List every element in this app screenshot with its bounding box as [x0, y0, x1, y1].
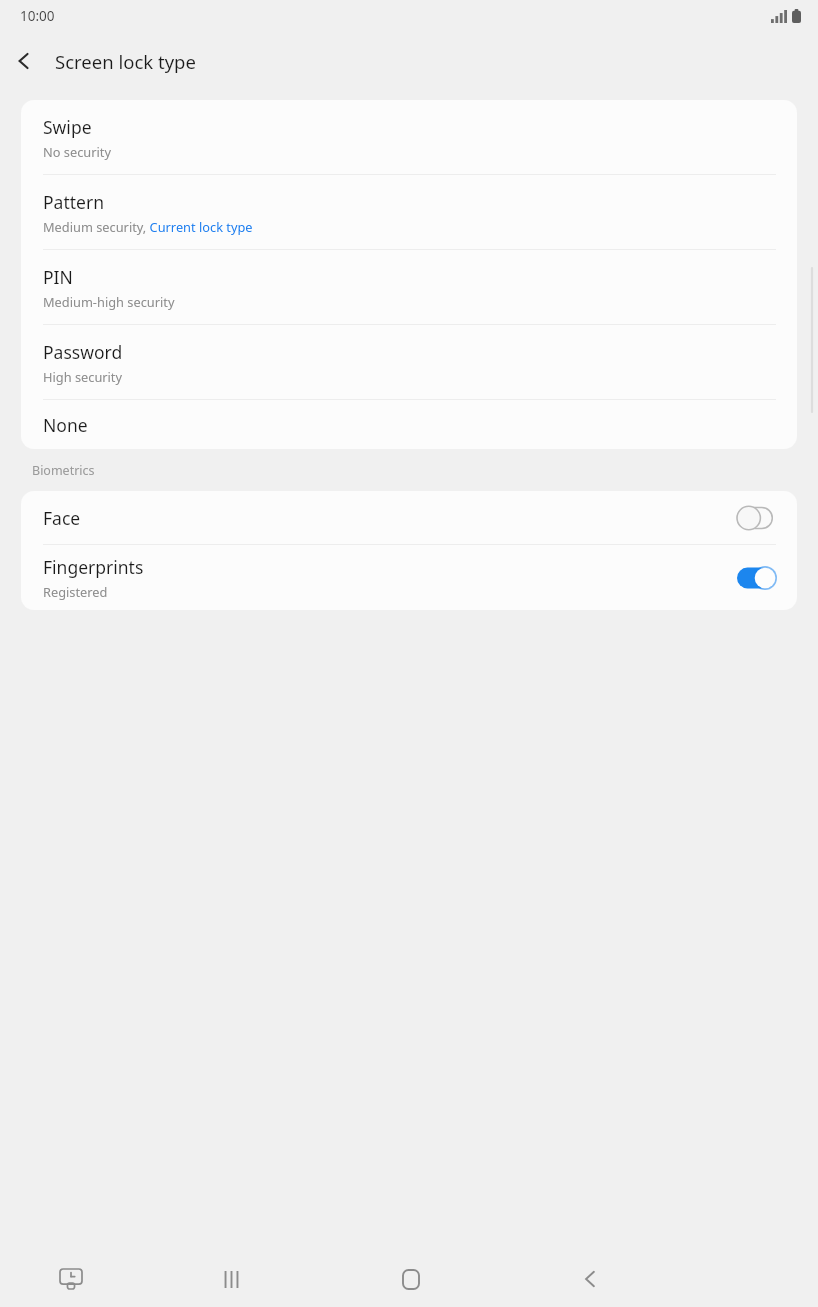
button[interactable]: Pattern [21, 175, 797, 250]
button[interactable]: Fingerprints [21, 545, 797, 610]
button[interactable]: Recent apps [142, 1255, 321, 1303]
staticText: High security [43, 368, 123, 385]
button[interactable]: PIN [21, 250, 797, 325]
staticText: None [43, 413, 88, 437]
staticText: Biometrics [32, 462, 95, 479]
button[interactable]: Back [0, 37, 48, 85]
staticText: Screen lock type [55, 49, 196, 74]
button[interactable]: Back [500, 1255, 679, 1303]
button[interactable]: None [21, 400, 797, 449]
staticText: Fingerprints [43, 555, 144, 579]
button[interactable]: Swipe [21, 100, 797, 175]
staticText: Medium security, Current lock type [43, 218, 253, 235]
staticText: Swipe [43, 115, 92, 139]
button[interactable]: Capture screen [0, 1255, 142, 1303]
button[interactable]: Off [737, 505, 777, 531]
staticText: Face [43, 506, 81, 530]
button[interactable]: Face [21, 491, 797, 545]
button[interactable]: On [737, 565, 777, 591]
button[interactable]: Password [21, 325, 797, 400]
staticText: 10:00 [20, 7, 55, 25]
staticText: No security [43, 143, 111, 160]
staticText: PIN [43, 265, 73, 289]
button[interactable]: Home [321, 1255, 500, 1303]
staticText: Medium-high security [43, 293, 175, 310]
staticText: Pattern [43, 190, 104, 214]
staticText: Registered [43, 583, 108, 600]
staticText: Password [43, 340, 123, 364]
